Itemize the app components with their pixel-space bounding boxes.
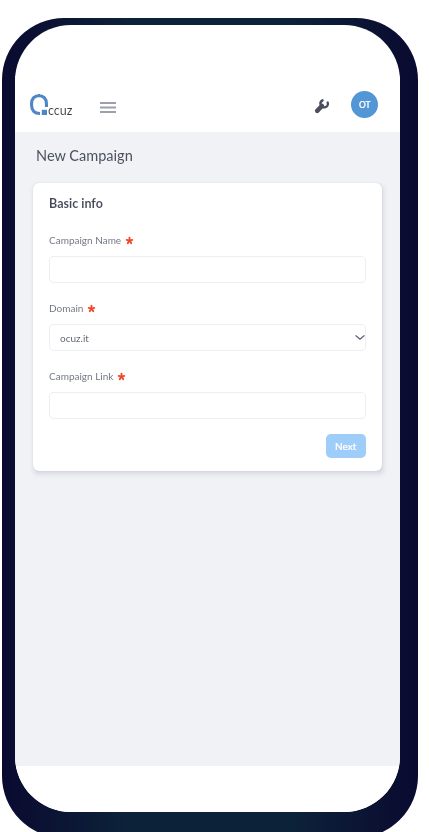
button[interactable]: Tools — [311, 93, 333, 115]
staticText: Campaign Name — [49, 234, 122, 246]
button[interactable]: ocuz.it — [49, 324, 366, 351]
staticText: Basic info — [49, 196, 103, 211]
button[interactable]: Open navigation menu — [93, 89, 123, 119]
staticText: Domain — [49, 302, 84, 314]
button[interactable]: ccuz — [30, 94, 73, 115]
button[interactable]: Next — [326, 434, 366, 458]
staticText: OT — [359, 100, 371, 110]
staticText: ccuz — [48, 103, 73, 118]
staticText: Campaign Link — [49, 370, 114, 382]
button[interactable] — [49, 256, 366, 283]
staticText: New Campaign — [36, 147, 133, 164]
button[interactable]: Account — [351, 91, 378, 118]
staticText: ocuz.it — [60, 332, 89, 344]
button[interactable] — [49, 392, 366, 419]
staticText: Next — [335, 440, 357, 452]
